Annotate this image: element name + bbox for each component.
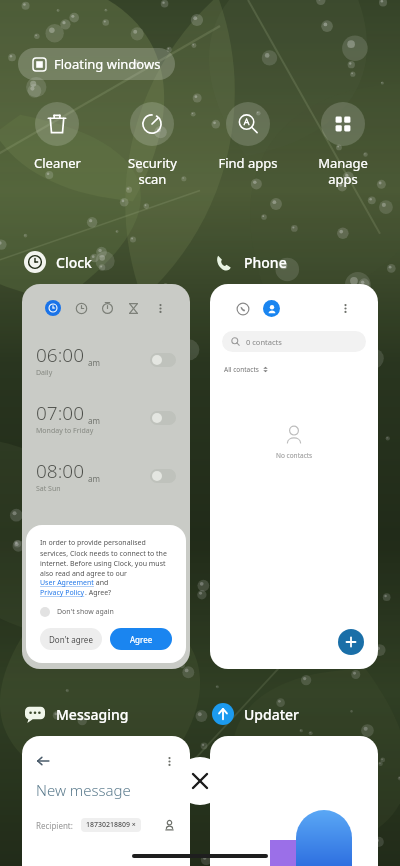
button[interactable]: 06:00 bbox=[36, 342, 176, 378]
button[interactable] bbox=[150, 469, 176, 483]
staticText: New message bbox=[36, 780, 131, 800]
staticText: 08:00 bbox=[36, 458, 85, 484]
button[interactable] bbox=[210, 736, 378, 866]
staticText: 07:00 bbox=[36, 400, 85, 426]
button[interactable]: 07:00 bbox=[36, 400, 176, 436]
staticText: 18730218809 × bbox=[86, 820, 136, 830]
button[interactable]: User Agreement bbox=[40, 578, 94, 588]
button[interactable]: Phone bbox=[210, 249, 289, 275]
staticText: In order to provide personalised service… bbox=[40, 538, 172, 578]
staticText: 0 contacts bbox=[246, 337, 282, 347]
button[interactable]: New message bbox=[22, 736, 190, 866]
staticText: am bbox=[88, 357, 100, 368]
button[interactable]: Messaging bbox=[22, 701, 131, 727]
staticText: am bbox=[88, 473, 100, 484]
staticText: Clock bbox=[56, 253, 92, 272]
button[interactable]: Manage apps bbox=[299, 98, 387, 191]
button[interactable]: Privacy Policy bbox=[40, 588, 85, 598]
staticText: Cleaner bbox=[34, 154, 81, 172]
button[interactable]: Close all bbox=[176, 757, 224, 805]
button[interactable]: Add contact bbox=[338, 629, 364, 655]
staticText: Sat Sun bbox=[36, 484, 61, 494]
staticText: All contacts bbox=[224, 365, 259, 374]
button[interactable]: Floating windows bbox=[18, 48, 175, 80]
button[interactable]: Cleaner bbox=[13, 98, 101, 176]
staticText: Monday to Friday bbox=[36, 426, 94, 436]
staticText: Security scan bbox=[128, 154, 177, 187]
staticText: Don't show again bbox=[57, 607, 114, 617]
button[interactable]: 06:00 bbox=[22, 284, 190, 669]
staticText: and bbox=[94, 578, 111, 588]
staticText: Recipient: bbox=[36, 820, 73, 831]
button[interactable]: Don't show again bbox=[40, 607, 114, 617]
staticText: am bbox=[88, 415, 100, 426]
staticText: No contacts bbox=[276, 451, 313, 460]
button[interactable]: Find apps bbox=[204, 98, 292, 176]
button[interactable]: Updater bbox=[210, 701, 302, 727]
staticText: Updater bbox=[244, 705, 300, 724]
button[interactable]: Clock bbox=[22, 249, 94, 275]
staticText: Phone bbox=[244, 253, 287, 272]
button[interactable]: Don't agree bbox=[40, 628, 102, 650]
button[interactable]: All contacts bbox=[224, 365, 269, 374]
staticText: Find apps bbox=[218, 154, 278, 172]
staticText: . Agree? bbox=[85, 588, 112, 598]
button[interactable] bbox=[150, 411, 176, 425]
staticText: Don't agree bbox=[49, 634, 93, 645]
button[interactable]: 0 contacts bbox=[210, 284, 378, 669]
button[interactable] bbox=[150, 353, 176, 367]
button[interactable]: Security scan bbox=[108, 98, 196, 191]
staticText: Messaging bbox=[56, 705, 129, 724]
staticText: 06:00 bbox=[36, 342, 85, 368]
button[interactable]: 08:00 bbox=[36, 458, 176, 494]
staticText: Daily bbox=[36, 368, 53, 378]
button[interactable]: Agree bbox=[110, 628, 172, 650]
staticText: Manage apps bbox=[318, 154, 368, 187]
button[interactable]: 0 contacts bbox=[222, 331, 366, 352]
staticText: Floating windows bbox=[54, 55, 161, 73]
staticText: Agree bbox=[130, 634, 153, 645]
